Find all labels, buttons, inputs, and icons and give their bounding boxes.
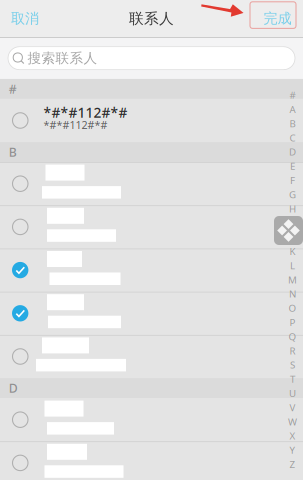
staticText: L bbox=[290, 259, 295, 272]
button[interactable] bbox=[0, 248, 303, 292]
staticText: 联系人 bbox=[129, 9, 174, 28]
button[interactable]: 完成 bbox=[245, 0, 303, 37]
staticText: G bbox=[289, 188, 296, 201]
staticText: D bbox=[289, 145, 296, 158]
staticText: Q bbox=[288, 330, 296, 343]
staticText: I bbox=[291, 216, 294, 229]
staticText: J bbox=[291, 230, 294, 244]
staticText: B bbox=[289, 117, 295, 130]
staticText: 搜索联系人 bbox=[27, 50, 97, 67]
staticText: T bbox=[290, 372, 295, 386]
staticText: R bbox=[289, 344, 295, 357]
button[interactable] bbox=[0, 398, 303, 441]
button[interactable] bbox=[0, 162, 303, 205]
staticText: # bbox=[289, 88, 295, 102]
staticText: B bbox=[9, 144, 17, 160]
staticText: M bbox=[288, 273, 297, 286]
staticText: C bbox=[289, 131, 295, 144]
button[interactable]: 搜索联系人 bbox=[8, 47, 295, 70]
button[interactable] bbox=[0, 335, 303, 378]
staticText: *#*#112#*# bbox=[43, 118, 107, 132]
button[interactable] bbox=[0, 205, 303, 248]
staticText: N bbox=[289, 287, 296, 300]
staticText: W bbox=[288, 415, 297, 428]
staticText: K bbox=[289, 245, 295, 258]
button[interactable]: Assistive Touch bbox=[274, 216, 303, 245]
button[interactable]: 取消 bbox=[0, 0, 57, 37]
staticText: P bbox=[289, 316, 295, 329]
staticText: 取消 bbox=[11, 10, 39, 27]
button[interactable] bbox=[0, 441, 303, 480]
staticText: O bbox=[288, 301, 296, 315]
staticText: Z bbox=[289, 458, 295, 471]
button[interactable]: Index bbox=[285, 88, 299, 471]
staticText: 完成 bbox=[263, 10, 291, 27]
button[interactable] bbox=[0, 292, 303, 335]
button[interactable]: *#*#112#*# bbox=[0, 99, 303, 142]
staticText: # bbox=[9, 80, 17, 97]
staticText: E bbox=[290, 159, 295, 173]
staticText: *#*#112#*# bbox=[43, 103, 127, 122]
staticText: U bbox=[289, 387, 296, 400]
staticText: X bbox=[289, 429, 295, 442]
staticText: S bbox=[290, 358, 295, 371]
staticText: H bbox=[289, 202, 296, 215]
staticText: A bbox=[289, 103, 295, 116]
staticText: F bbox=[290, 174, 295, 187]
staticText: D bbox=[9, 380, 18, 396]
staticText: Y bbox=[289, 443, 295, 457]
staticText: V bbox=[289, 401, 295, 414]
